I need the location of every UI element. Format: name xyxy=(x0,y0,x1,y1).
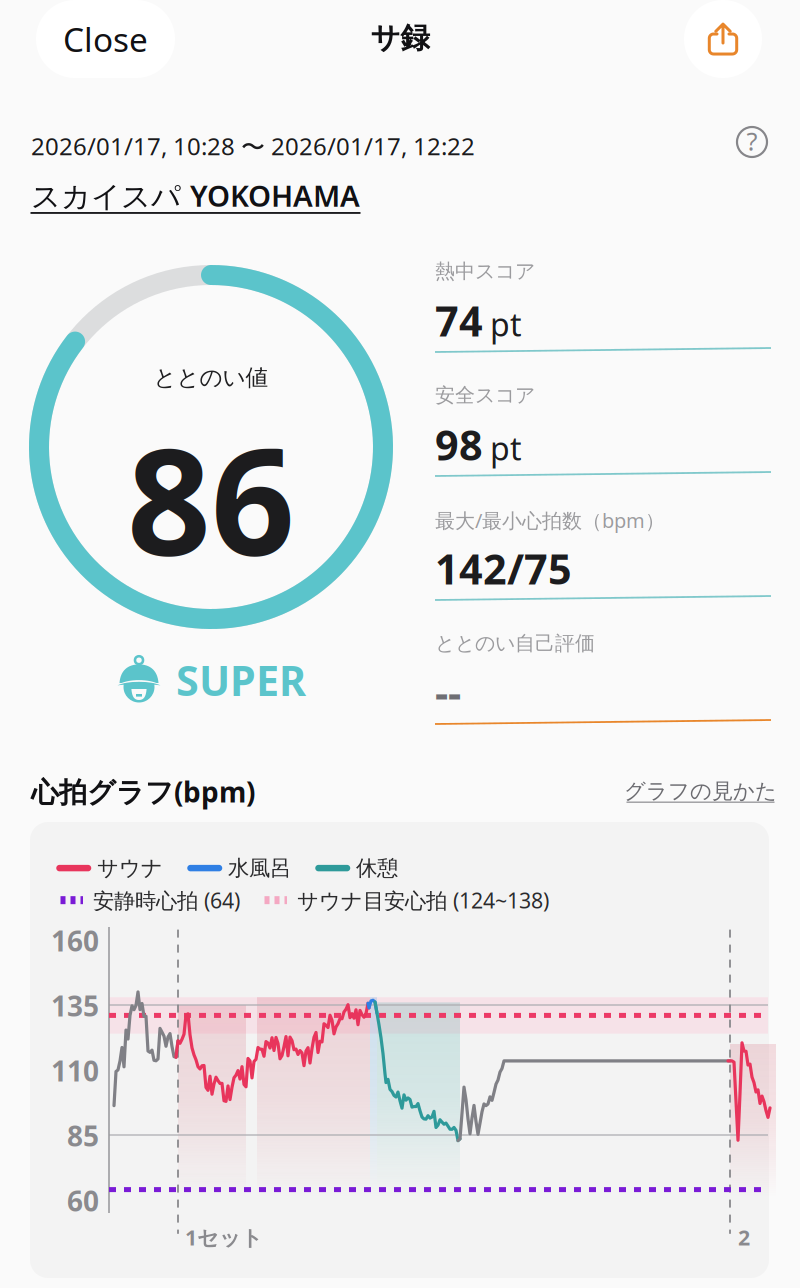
staticText: SUPER xyxy=(176,653,306,707)
staticText: 135 xyxy=(51,987,99,1024)
staticText: 休憩 xyxy=(356,855,398,881)
staticText: 2 xyxy=(738,1223,750,1251)
staticText: 60 xyxy=(67,1182,99,1219)
staticText: 熱中スコア xyxy=(435,259,535,284)
staticText: スカイスパ YOKOHAMA xyxy=(31,176,360,215)
staticText: pt xyxy=(490,427,522,469)
staticText: 110 xyxy=(51,1052,99,1089)
staticText: 85 xyxy=(67,1117,99,1154)
staticText: 最大/最小心拍数（bpm） xyxy=(435,507,665,534)
staticText: サウナ xyxy=(97,855,163,881)
staticText: 1セット xyxy=(185,1223,263,1251)
staticText: -- xyxy=(435,665,461,720)
staticText: 98 xyxy=(435,417,483,472)
button[interactable]: スカイスパ YOKOHAMA xyxy=(31,176,360,215)
staticText: 74 xyxy=(435,293,483,348)
staticText: グラフの見かた xyxy=(624,778,777,804)
button[interactable]: Help xyxy=(737,127,767,157)
staticText: Close xyxy=(63,17,148,61)
staticText: ととのい値 xyxy=(153,364,268,391)
staticText: 安全スコア xyxy=(435,383,535,408)
staticText: 安静時心拍 (64) xyxy=(93,886,240,914)
staticText: pt xyxy=(490,303,522,345)
staticText: 160 xyxy=(51,922,99,959)
staticText: 2026/01/17, 10:28 〜 2026/01/17, 12:22 xyxy=(31,130,475,162)
button[interactable]: Share xyxy=(684,0,762,78)
staticText: 86 xyxy=(127,401,295,596)
staticText: ? xyxy=(746,124,757,158)
button[interactable]: グラフの見かた xyxy=(624,778,777,804)
staticText: ととのい自己評価 xyxy=(435,631,595,656)
staticText: 水風呂 xyxy=(228,855,291,881)
button[interactable]: Close xyxy=(36,0,175,78)
staticText: サウナ目安心拍 (124~138) xyxy=(297,886,549,914)
staticText: 心拍グラフ(bpm) xyxy=(31,773,255,810)
staticText: 142/75 xyxy=(435,541,572,596)
staticText: サ録 xyxy=(370,20,429,56)
